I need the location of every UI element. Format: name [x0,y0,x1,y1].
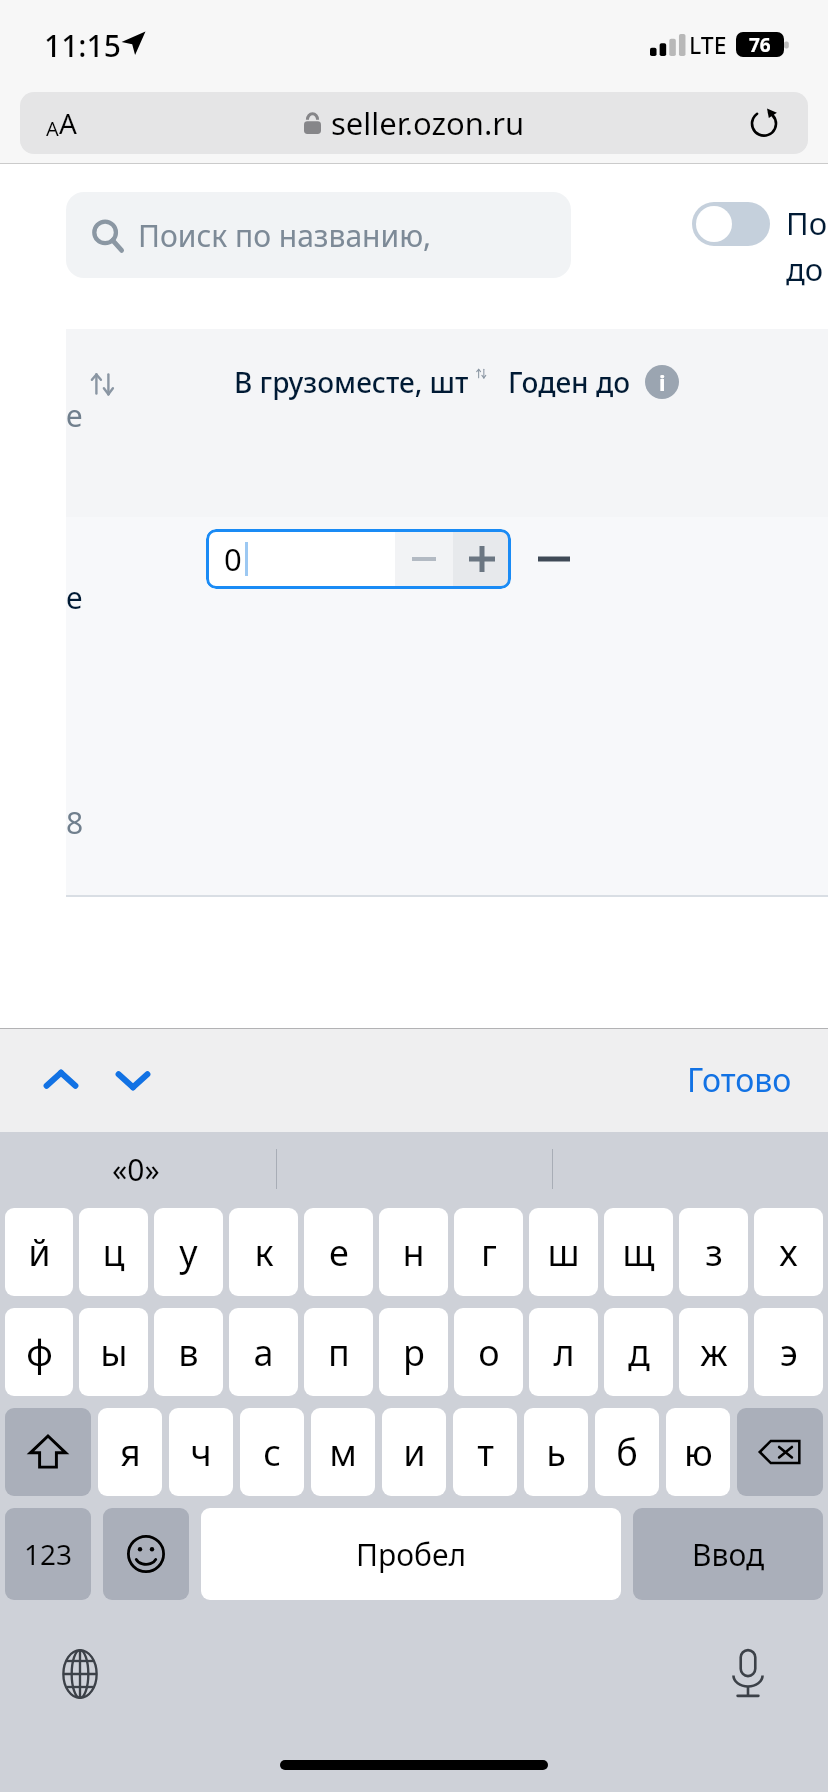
staticText: 76 [749,32,771,57]
button[interactable]: с [240,1408,304,1496]
button[interactable]: в [154,1308,223,1396]
button[interactable]: ч [169,1408,233,1496]
button[interactable]: Toggle [692,202,770,246]
staticText: ь [546,1428,566,1477]
button[interactable]: г [454,1208,523,1296]
staticText: т [477,1428,494,1477]
button[interactable]: з [679,1208,748,1296]
staticText: п [328,1328,350,1377]
button[interactable]: у [154,1208,223,1296]
button[interactable]: 0 [206,529,511,589]
staticText: ж [700,1328,728,1377]
button[interactable]: Next field [102,1049,164,1111]
staticText: е [66,395,83,436]
staticText: до [786,248,824,290]
button[interactable]: ж [679,1308,748,1396]
staticText: 123 [24,1535,73,1573]
staticText: LTE [689,29,727,60]
staticText: 11:15 [44,25,121,66]
staticText: о [478,1328,500,1377]
staticText: Готово [687,1058,792,1102]
button[interactable]: а [229,1308,298,1396]
button[interactable]: д [604,1308,673,1396]
button[interactable]: Reload [742,101,786,145]
staticText: е [329,1228,349,1277]
staticText: е [66,577,83,618]
staticText: «0» [112,1149,160,1190]
staticText: у [179,1228,198,1277]
staticText: с [263,1428,281,1477]
button[interactable]: Text size [46,104,77,142]
staticText: к [254,1228,274,1277]
button[interactable]: Increase [453,529,511,589]
staticText: По [786,202,828,244]
staticText: н [402,1228,425,1277]
staticText: 0 [224,538,242,580]
button[interactable]: Text size [20,92,808,154]
button[interactable]: Поиск по названию, штрихкоду [66,192,571,278]
button[interactable]: Dictation [716,1642,780,1706]
button[interactable]: б [595,1408,659,1496]
button[interactable]: н [379,1208,448,1296]
button[interactable]: Previous field [30,1049,92,1111]
staticText: ф [26,1328,53,1377]
staticText: ч [190,1428,212,1477]
button[interactable]: ф [5,1308,73,1396]
staticText: i [659,367,666,397]
staticText: г [481,1228,497,1277]
button[interactable]: х [754,1208,823,1296]
staticText: seller.ozon.ru [331,102,525,144]
button[interactable]: ц [79,1208,148,1296]
button[interactable]: 123 [5,1508,91,1600]
staticText: з [705,1228,723,1277]
button[interactable]: ь [524,1408,588,1496]
button[interactable]: Backspace [737,1408,823,1496]
button[interactable]: Emoji [103,1508,189,1600]
staticText: а [253,1328,274,1377]
staticText: в [178,1328,199,1377]
button[interactable]: е [304,1208,373,1296]
button[interactable]: и [382,1408,446,1496]
button[interactable]: к [229,1208,298,1296]
staticText: A [46,115,59,142]
button[interactable]: щ [604,1208,673,1296]
button[interactable]: Decrease [395,529,453,589]
button[interactable]: Shift [5,1408,91,1496]
staticText: ю [684,1428,713,1477]
staticText: щ [622,1228,655,1277]
button[interactable]: Пробел [201,1508,621,1600]
button[interactable]: Info [645,365,679,399]
staticText: э [780,1328,798,1377]
staticText: 8 [66,802,84,843]
staticText: Годен до [508,363,631,401]
button[interactable]: э [754,1308,823,1396]
staticText: д [628,1328,650,1377]
button[interactable]: м [311,1408,375,1496]
button[interactable]: т [453,1408,517,1496]
staticText: б [616,1428,638,1477]
staticText: Ввод [692,1534,765,1575]
staticText: ы [100,1328,128,1377]
staticText: ш [547,1228,580,1277]
staticText: м [329,1428,357,1477]
button[interactable]: й [5,1208,73,1296]
button[interactable]: п [304,1308,373,1396]
staticText: х [779,1228,798,1277]
button[interactable]: ю [666,1408,730,1496]
button[interactable]: Ввод [633,1508,823,1600]
staticText: Поиск по названию, штрихкоду [138,215,571,256]
button[interactable]: ш [529,1208,598,1296]
staticText: й [28,1228,51,1277]
staticText: A [59,104,77,142]
staticText: я [120,1428,141,1477]
button[interactable]: о [454,1308,523,1396]
button[interactable]: л [529,1308,598,1396]
button[interactable]: ы [79,1308,148,1396]
staticText: л [553,1328,575,1377]
staticText: ц [102,1228,125,1277]
button[interactable]: я [98,1408,162,1496]
button[interactable]: Готово [675,1048,804,1112]
button[interactable]: р [379,1308,448,1396]
staticText: В грузоместе, шт [234,363,469,401]
button[interactable]: Change keyboard [48,1642,112,1706]
